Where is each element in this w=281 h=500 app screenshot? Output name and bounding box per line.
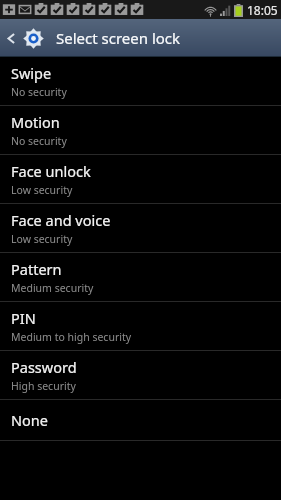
staticText: No security [11, 134, 67, 148]
staticText: Swipe [11, 63, 52, 83]
staticText: Low security [11, 183, 73, 197]
staticText: None [11, 410, 48, 430]
button[interactable]: Pattern [0, 253, 281, 301]
staticText: PIN [11, 308, 36, 328]
staticText: Medium to high security [11, 330, 132, 344]
button[interactable]: None [0, 400, 281, 440]
button[interactable]: Motion [0, 106, 281, 154]
staticText: Motion [11, 112, 60, 132]
button[interactable]: Back [0, 19, 23, 57]
button[interactable]: Face and voice [0, 204, 281, 252]
button[interactable]: PIN [0, 302, 281, 350]
staticText: High security [11, 379, 76, 393]
staticText: Low security [11, 232, 73, 246]
staticText: 18:05 [247, 2, 278, 18]
button[interactable]: Swipe [0, 57, 281, 105]
staticText: Face unlock [11, 161, 91, 181]
staticText: No security [11, 85, 67, 99]
staticText: Medium security [11, 281, 94, 295]
staticText: Face and voice [11, 210, 111, 230]
staticText: Pattern [11, 259, 62, 279]
staticText: Select screen lock [56, 28, 181, 48]
staticText: Password [11, 357, 77, 377]
button[interactable]: Password [0, 351, 281, 399]
button[interactable]: Face unlock [0, 155, 281, 203]
